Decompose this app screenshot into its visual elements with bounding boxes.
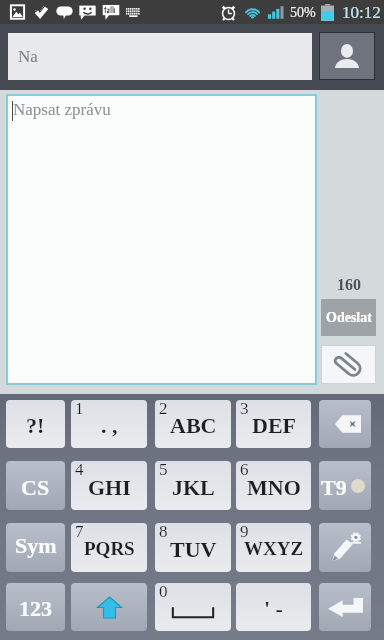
button[interactable]: Attach file xyxy=(322,346,375,383)
staticText: WXYZ xyxy=(244,538,304,559)
button[interactable]: Na xyxy=(8,33,312,80)
button[interactable]: Enter xyxy=(319,583,371,631)
staticText: ?! xyxy=(26,413,45,437)
button[interactable]: Shift xyxy=(71,583,147,631)
button[interactable]: 1 xyxy=(71,400,147,448)
staticText: TUV xyxy=(170,537,217,561)
button[interactable]: 123 xyxy=(6,583,65,631)
staticText: MNO xyxy=(247,475,301,499)
button[interactable]: Space xyxy=(155,583,231,631)
button[interactable]: 6 xyxy=(236,461,311,510)
staticText: T9 xyxy=(321,475,347,499)
button[interactable]: ' - xyxy=(236,583,311,631)
button[interactable]: Choose contact xyxy=(320,33,374,79)
staticText: 50% xyxy=(290,5,316,21)
staticText: Sym xyxy=(15,533,57,557)
staticText: Na xyxy=(18,47,38,66)
staticText: ' - xyxy=(264,596,283,620)
staticText: . , xyxy=(101,413,118,437)
button[interactable]: 8 xyxy=(155,523,231,572)
staticText: 160 xyxy=(337,276,361,294)
staticText: 1 xyxy=(75,400,84,418)
staticText: 7 xyxy=(75,523,84,541)
button[interactable]: 2 xyxy=(155,400,231,448)
staticText: 8 xyxy=(159,523,168,541)
staticText: 2 xyxy=(159,400,168,418)
button[interactable]: T9 xyxy=(319,461,371,510)
button[interactable]: 9 xyxy=(236,523,311,572)
button[interactable]: Napsat zprávu xyxy=(6,94,317,385)
staticText: 123 xyxy=(19,596,52,620)
staticText: 0 xyxy=(159,583,168,601)
staticText: CS xyxy=(21,475,50,499)
staticText: 10:12 xyxy=(342,3,381,22)
staticText: 6 xyxy=(240,461,249,479)
staticText: GHI xyxy=(88,475,131,499)
staticText: JKL xyxy=(172,475,215,499)
button[interactable]: Odeslat xyxy=(321,299,376,336)
button[interactable]: Settings xyxy=(319,523,371,572)
staticText: 3 xyxy=(240,400,249,418)
button[interactable]: Backspace xyxy=(319,400,371,448)
staticText: Odeslat xyxy=(326,310,372,326)
button[interactable]: Sym xyxy=(6,523,65,572)
button[interactable]: 4 xyxy=(71,461,147,510)
staticText: 5 xyxy=(159,461,168,479)
staticText: PQRS xyxy=(84,538,135,559)
button[interactable]: ?! xyxy=(6,400,65,448)
staticText: ABC xyxy=(170,413,217,437)
staticText: DEF xyxy=(252,413,296,437)
button[interactable]: 7 xyxy=(71,523,147,572)
staticText: Napsat zprávu xyxy=(13,100,111,119)
button[interactable]: CS xyxy=(6,461,65,510)
staticText: 4 xyxy=(75,461,84,479)
staticText: 9 xyxy=(240,523,249,541)
button[interactable]: 5 xyxy=(155,461,231,510)
button[interactable]: 3 xyxy=(236,400,311,448)
